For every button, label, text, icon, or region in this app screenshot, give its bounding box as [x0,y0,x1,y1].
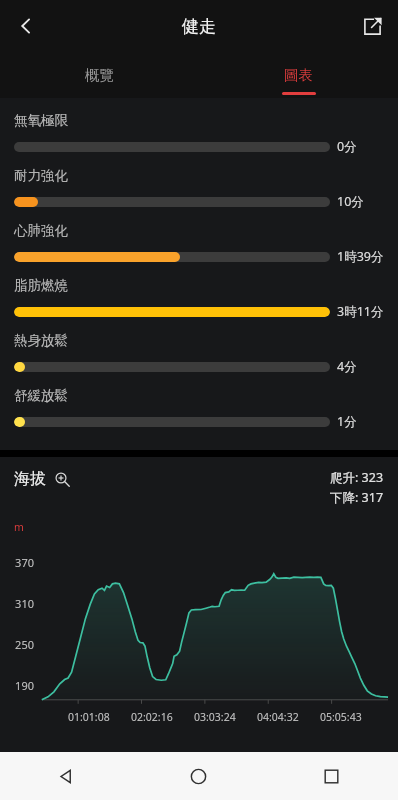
staticText: 海拔 [14,469,46,489]
button[interactable]: 圖表 [199,52,398,98]
staticText: 耐力強化 [14,167,68,184]
button[interactable]: Back [0,0,52,52]
button[interactable]: Share [346,0,398,52]
staticText: 370 [0,555,34,570]
staticText: 1分 [337,413,357,430]
button[interactable]: 脂肪燃燒 [0,271,398,326]
staticText: 3時11分 [337,303,384,320]
staticText: 心肺強化 [14,222,68,239]
button[interactable]: 無氧極限 [0,106,398,161]
staticText: 03:03:24 [194,710,236,724]
staticText: 310 [0,596,34,611]
staticText: 脂肪燃燒 [14,277,68,294]
staticText: 190 [0,678,34,693]
staticText: 250 [0,637,34,652]
button[interactable]: Home [132,752,265,800]
staticText: 1時39分 [337,248,384,265]
other: Zoom in chart [52,469,72,489]
button[interactable]: Back [0,752,132,800]
button[interactable]: 海拔 [14,469,72,489]
staticText: 概覽 [85,66,114,84]
staticText: 爬升: 323 [330,469,384,486]
staticText: 10分 [337,193,364,210]
button[interactable]: 熱身放鬆 [0,326,398,381]
staticText: 無氧極限 [14,112,68,129]
staticText: 05:05:43 [320,710,362,724]
button[interactable]: 概覽 [0,52,199,98]
staticText: 熱身放鬆 [14,332,68,349]
staticText: 下降: 317 [330,489,384,506]
staticText: 01:01:08 [68,710,110,724]
button[interactable]: 心肺強化 [0,216,398,271]
staticText: 02:02:16 [131,710,173,724]
staticText: 健走 [182,16,216,37]
staticText: m [14,520,24,534]
button[interactable]: 舒緩放鬆 [0,381,398,436]
staticText: 04:04:32 [257,710,299,724]
staticText: 4分 [337,358,357,375]
button[interactable]: 耐力強化 [0,161,398,216]
staticText: 0分 [337,138,357,155]
button[interactable]: Recent apps [265,752,398,800]
staticText: 圖表 [284,66,313,84]
staticText: 舒緩放鬆 [14,387,68,404]
